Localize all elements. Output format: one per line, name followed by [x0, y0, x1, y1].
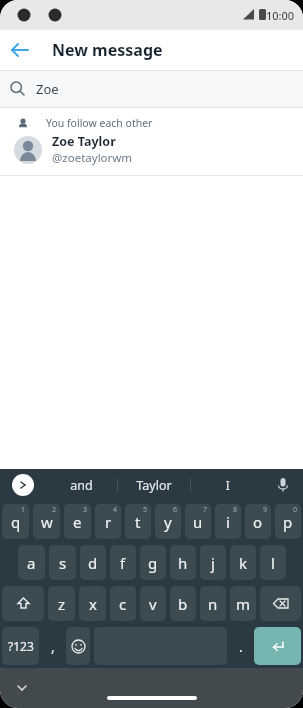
staticText: and: [70, 477, 93, 494]
staticText: n: [208, 594, 218, 614]
button[interactable]: b: [170, 586, 196, 621]
button[interactable]: g: [140, 545, 166, 580]
staticText: 6: [173, 505, 178, 515]
staticText: e: [73, 512, 82, 532]
button[interactable]: q: [2, 504, 29, 539]
staticText: New message: [52, 39, 163, 61]
button[interactable]: t: [125, 504, 151, 539]
staticText: l: [271, 553, 275, 573]
staticText: v: [149, 594, 157, 614]
staticText: 2: [52, 505, 57, 515]
staticText: 10:00: [266, 8, 295, 23]
staticText: ?123: [8, 638, 34, 654]
staticText: Zoe: [36, 80, 59, 98]
staticText: 1: [21, 505, 26, 515]
button[interactable]: Back: [0, 30, 40, 70]
staticText: 8: [233, 505, 238, 515]
button[interactable]: Enter: [254, 627, 301, 665]
staticText: x: [89, 594, 97, 614]
staticText: 5: [143, 505, 148, 515]
staticText: @zoetaylorwm: [52, 150, 133, 166]
staticText: t: [135, 512, 141, 532]
button[interactable]: Backspace: [260, 586, 301, 621]
staticText: b: [178, 594, 188, 614]
button[interactable]: You follow each other: [0, 108, 303, 175]
staticText: c: [119, 594, 127, 614]
button[interactable]: z: [48, 586, 75, 621]
button[interactable]: Taylor: [118, 469, 190, 501]
button[interactable]: u: [185, 504, 211, 539]
staticText: m: [236, 594, 251, 614]
button[interactable]: n: [200, 586, 226, 621]
button[interactable]: r: [95, 504, 121, 539]
staticText: .: [239, 637, 243, 656]
staticText: q: [11, 512, 21, 532]
button[interactable]: d: [80, 545, 106, 580]
button[interactable]: Shift: [2, 586, 44, 621]
button[interactable]: ?123: [2, 627, 39, 665]
staticText: Taylor: [136, 477, 172, 494]
staticText: d: [88, 553, 98, 573]
button[interactable]: Zoe: [0, 71, 303, 107]
button[interactable]: .: [229, 624, 252, 668]
staticText: I: [225, 477, 230, 494]
button[interactable]: Hide keyboard: [4, 668, 40, 708]
staticText: You follow each other: [46, 116, 153, 130]
button[interactable]: v: [140, 586, 166, 621]
staticText: 7: [203, 505, 208, 515]
button[interactable]: Expand: [12, 474, 34, 496]
staticText: k: [239, 553, 248, 573]
staticText: h: [178, 553, 188, 573]
staticText: u: [193, 512, 203, 532]
button[interactable]: m: [230, 586, 256, 621]
button[interactable]: f: [110, 545, 136, 580]
button[interactable]: p: [275, 504, 301, 539]
button[interactable]: Emoji: [66, 627, 90, 665]
staticText: s: [59, 553, 67, 573]
staticText: 0: [293, 505, 298, 515]
staticText: i: [226, 512, 230, 532]
button[interactable]: l: [260, 545, 286, 580]
button[interactable]: i: [215, 504, 241, 539]
staticText: p: [283, 512, 293, 532]
button[interactable]: k: [230, 545, 256, 580]
button[interactable]: and: [46, 469, 117, 501]
button[interactable]: s: [49, 545, 76, 580]
staticText: f: [120, 553, 126, 573]
staticText: ,: [51, 637, 55, 656]
button[interactable]: o: [245, 504, 271, 539]
button[interactable]: j: [200, 545, 226, 580]
button[interactable]: e: [64, 504, 91, 539]
staticText: g: [148, 553, 158, 573]
button[interactable]: h: [170, 545, 196, 580]
button[interactable]: a: [18, 545, 45, 580]
staticText: r: [105, 512, 112, 532]
staticText: 3: [83, 505, 88, 515]
staticText: 4: [113, 505, 118, 515]
staticText: z: [58, 594, 66, 614]
staticText: 9: [263, 505, 268, 515]
staticText: w: [41, 512, 53, 532]
staticText: Zoe Taylor: [52, 133, 116, 150]
button[interactable]: y: [155, 504, 181, 539]
staticText: a: [27, 553, 36, 573]
button[interactable]: ,: [41, 624, 64, 668]
button[interactable]: c: [110, 586, 136, 621]
button[interactable]: w: [33, 504, 60, 539]
button[interactable]: x: [79, 586, 106, 621]
staticText: j: [211, 553, 215, 573]
staticText: o: [253, 512, 263, 532]
staticText: y: [164, 512, 172, 532]
button[interactable]: Voice input: [263, 469, 303, 501]
button[interactable]: I: [191, 469, 263, 501]
